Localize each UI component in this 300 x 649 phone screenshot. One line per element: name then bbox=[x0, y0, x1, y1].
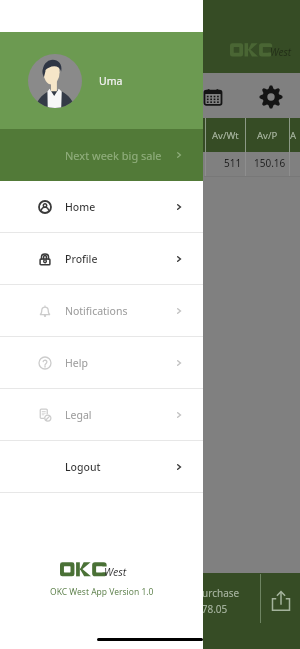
staticText: $78.05 bbox=[196, 602, 228, 616]
staticText: OKC West App Version 1.0 bbox=[50, 586, 154, 598]
staticText: Home bbox=[65, 200, 96, 214]
button[interactable]: Legal bbox=[0, 389, 203, 440]
staticText: Profile bbox=[65, 252, 98, 266]
staticText: Help bbox=[65, 356, 88, 370]
staticText: Uma bbox=[99, 74, 123, 88]
button[interactable]: Help bbox=[0, 337, 203, 388]
staticText: Av/Wt bbox=[212, 129, 239, 142]
staticText: 150.16 bbox=[254, 156, 286, 170]
staticText: Av/P bbox=[257, 129, 278, 142]
staticText: West bbox=[104, 565, 127, 579]
staticText: West bbox=[270, 45, 292, 59]
staticText: Legal bbox=[65, 408, 92, 422]
staticText: Next week big sale bbox=[65, 148, 162, 163]
staticText: Purchase bbox=[196, 586, 240, 600]
staticText: A bbox=[290, 129, 297, 142]
button[interactable]: Next week big sale bbox=[0, 129, 203, 181]
button[interactable]: Notifications bbox=[0, 285, 203, 336]
button[interactable]: Profile bbox=[0, 233, 203, 284]
staticText: 511 bbox=[224, 156, 242, 170]
staticText: Logout bbox=[65, 460, 101, 474]
staticText: Notifications bbox=[65, 304, 128, 318]
button[interactable]: Home bbox=[0, 181, 203, 232]
button[interactable]: Logout bbox=[0, 441, 203, 492]
